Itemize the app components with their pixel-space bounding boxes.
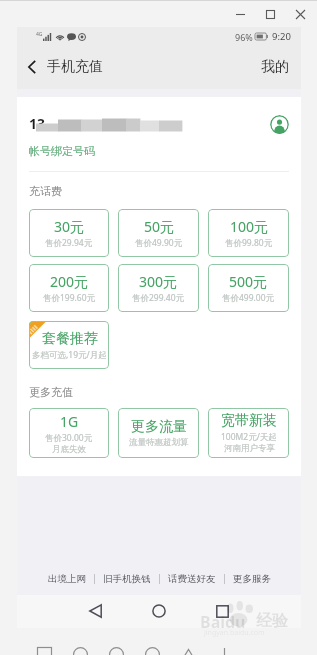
button[interactable]: 话费送好友 <box>160 568 224 590</box>
staticText: 宽带新装 <box>221 412 277 430</box>
staticText: 300元 <box>139 272 178 291</box>
staticText: 4G <box>36 31 43 38</box>
staticText: Baidu <box>200 611 246 633</box>
staticText: 200元 <box>50 272 89 291</box>
button[interactable]: 50元 <box>118 209 199 257</box>
staticText: 多档可选,19元/月起 <box>32 349 107 361</box>
staticText: 更多服务 <box>233 573 271 585</box>
staticText: 30元 <box>54 217 85 236</box>
button[interactable]: Account <box>270 115 289 134</box>
staticText: 手机充值 <box>47 58 103 76</box>
button[interactable]: 我的 <box>249 48 301 86</box>
staticText: 河南用户专享 <box>224 443 275 454</box>
staticText: 帐号绑定号码 <box>29 144 95 158</box>
button[interactable]: 更多流量 <box>118 408 199 458</box>
staticText: 500元 <box>229 272 268 291</box>
staticText: 售价299.40元 <box>132 292 185 304</box>
button[interactable]: 30元 <box>29 209 109 257</box>
staticText: 售价49.90元 <box>135 237 183 249</box>
button[interactable]: Minimize <box>225 1 255 27</box>
button[interactable]: Close <box>285 1 315 27</box>
staticText: 售价499.00元 <box>222 292 275 304</box>
staticText: 100元 <box>230 217 269 236</box>
button[interactable]: 更多服务 <box>225 568 279 590</box>
button[interactable]: 套餐推荐 <box>29 321 109 369</box>
staticText: 我的 <box>261 58 289 76</box>
button[interactable]: Maximize <box>255 1 285 27</box>
button[interactable]: Back <box>17 47 47 87</box>
staticText: 100M2元/天起 <box>221 431 277 443</box>
staticText: 售价30.00元 <box>45 432 93 444</box>
staticText: 售价99.80元 <box>225 237 273 249</box>
staticText: 更多充值 <box>29 385 73 399</box>
staticText: 96% <box>235 31 253 43</box>
button[interactable]: 旧手机换钱 <box>95 568 159 590</box>
button[interactable]: 200元 <box>29 264 109 312</box>
button[interactable]: Recents <box>216 605 229 618</box>
staticText: 经验 <box>256 611 288 631</box>
button[interactable]: 100元 <box>208 209 289 257</box>
staticText: 旧手机换钱 <box>103 573 151 585</box>
button[interactable]: Back <box>89 604 102 618</box>
staticText: 话费送好友 <box>168 573 216 585</box>
staticText: 出境上网 <box>48 573 86 585</box>
button[interactable]: 宽带新装 <box>208 408 289 458</box>
staticText: 更多流量 <box>131 418 187 436</box>
staticText: 月底失效 <box>52 444 86 455</box>
button[interactable]: 300元 <box>118 264 199 312</box>
staticText: 1G <box>60 412 79 431</box>
staticText: 9:20 <box>272 30 291 43</box>
staticText: 充话费 <box>29 184 62 198</box>
staticText: 13 <box>29 114 46 132</box>
staticText: 流量特惠超划算 <box>129 437 189 448</box>
staticText: 套餐推荐 <box>42 330 98 348</box>
button[interactable]: 出境上网 <box>40 568 94 590</box>
staticText: 50元 <box>144 217 175 236</box>
button[interactable]: 500元 <box>208 264 289 312</box>
staticText: 售价199.60元 <box>43 292 96 304</box>
staticText: jingyan.baidu.com <box>204 628 265 638</box>
button[interactable]: 1G <box>29 408 109 458</box>
staticText: 售价29.94元 <box>45 237 93 249</box>
button[interactable]: Home <box>152 604 166 618</box>
